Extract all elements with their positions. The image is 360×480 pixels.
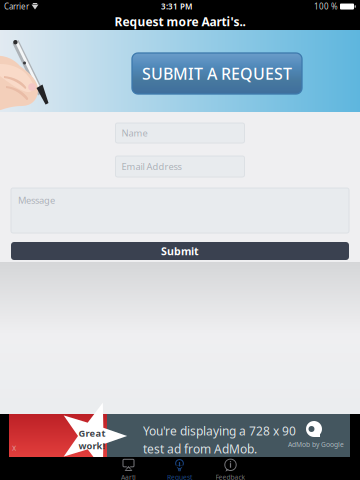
staticText: work! (78, 439, 105, 452)
staticText: Name (121, 127, 147, 139)
staticText: Message (18, 194, 55, 206)
staticText: x (12, 442, 16, 453)
button[interactable]: Feedback (205, 457, 256, 480)
button[interactable]: Submit (11, 242, 349, 260)
button[interactable]: Request (154, 457, 205, 480)
staticText: AdMob by Google (288, 440, 344, 449)
button[interactable]: Email Address (115, 156, 244, 177)
button[interactable]: Name (115, 123, 244, 143)
staticText: Request more Aarti's.. (114, 13, 245, 29)
staticText: Carrier (4, 1, 29, 12)
staticText: Feedback (215, 473, 245, 480)
staticText: test ad from AdMob. (143, 441, 257, 457)
button[interactable]: Aarti (103, 457, 154, 480)
staticText: 3:31 PM (161, 1, 192, 12)
staticText: Email Address (121, 160, 181, 173)
button[interactable]: SUBMIT A REQUEST (132, 53, 302, 94)
staticText: SUBMIT A REQUEST (142, 63, 292, 84)
staticText: Submit (161, 244, 199, 258)
button[interactable]: Advertisement (0, 414, 360, 457)
staticText: 100 % (314, 1, 338, 12)
staticText: You're displaying a 728 x 90 (143, 423, 296, 439)
staticText: Aarti (121, 473, 136, 480)
staticText: Great (78, 427, 105, 439)
button[interactable]: Message (11, 188, 349, 233)
staticText: Request (167, 473, 192, 480)
